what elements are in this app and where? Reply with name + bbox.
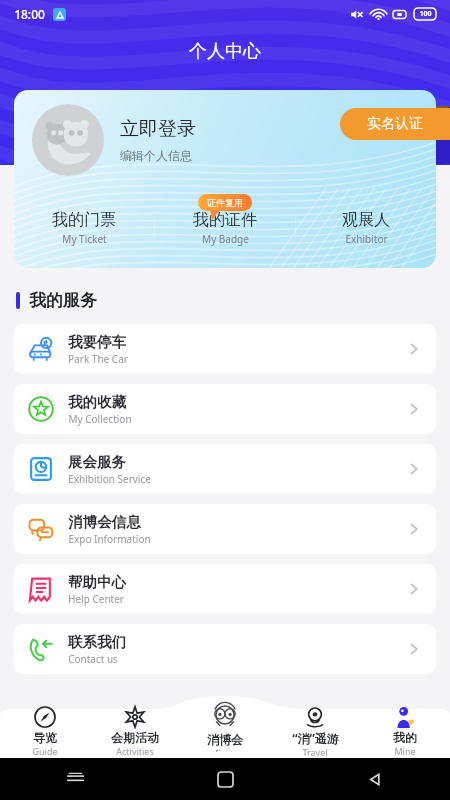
staticText: 观展人: [342, 210, 390, 230]
staticText: Help Center: [68, 592, 124, 606]
staticText: 我的门票: [52, 210, 116, 230]
staticText: 联系我们: [68, 633, 126, 651]
staticText: 导览: [33, 730, 57, 745]
button[interactable]: “消”遥游: [270, 706, 360, 758]
staticText: Contact us: [68, 652, 118, 666]
button[interactable]: 实名认证: [340, 108, 450, 140]
staticText: 证件复用: [207, 197, 243, 208]
staticText: Guide: [32, 745, 58, 757]
staticText: Exhibition Service: [68, 472, 151, 486]
staticText: Expo: [215, 747, 236, 752]
button[interactable]: 会期活动: [90, 706, 180, 757]
staticText: My Badge: [202, 232, 249, 246]
staticText: 展会服务: [68, 453, 126, 471]
staticText: 会期活动: [111, 730, 159, 745]
button[interactable]: 立即登录: [14, 90, 436, 268]
staticText: 我的收藏: [68, 393, 126, 411]
staticText: Exhibitor: [345, 232, 388, 246]
staticText: Activities: [116, 745, 154, 757]
staticText: Expo Information: [68, 532, 151, 546]
button[interactable]: 展会服务: [14, 444, 436, 494]
staticText: 我的证件: [193, 210, 257, 230]
staticText: 立即登录: [120, 117, 196, 141]
staticText: 18:00: [14, 6, 45, 22]
button[interactable]: 消博会: [180, 706, 270, 758]
button[interactable]: 我的收藏: [14, 384, 436, 434]
staticText: Mine: [394, 745, 416, 757]
staticText: 我要停车: [68, 333, 126, 351]
staticText: My Collection: [68, 412, 132, 426]
button[interactable]: 我的证件: [155, 210, 295, 246]
button[interactable]: 联系我们: [14, 624, 436, 674]
staticText: 我的: [393, 730, 417, 745]
staticText: My Ticket: [62, 232, 107, 246]
button[interactable]: 我要停车: [14, 324, 436, 374]
button[interactable]: 我的门票: [14, 210, 154, 246]
staticText: Park The Car: [68, 352, 128, 366]
staticText: 我的服务: [29, 290, 97, 311]
staticText: 消博会: [207, 732, 243, 747]
staticText: 100: [419, 9, 432, 19]
staticText: 编辑个人信息: [120, 148, 192, 163]
staticText: 实名认证: [367, 115, 423, 133]
staticText: “消”遥游: [292, 730, 339, 746]
button[interactable]: 观展人: [296, 210, 436, 246]
staticText: 个人中心: [189, 40, 261, 63]
staticText: 消博会信息: [68, 513, 141, 531]
button[interactable]: 我的: [360, 706, 450, 757]
button[interactable]: 导览: [0, 706, 90, 757]
button[interactable]: 帮助中心: [14, 564, 436, 614]
staticText: 帮助中心: [68, 573, 126, 591]
button[interactable]: 消博会信息: [14, 504, 436, 554]
staticText: Travel: [302, 746, 328, 758]
